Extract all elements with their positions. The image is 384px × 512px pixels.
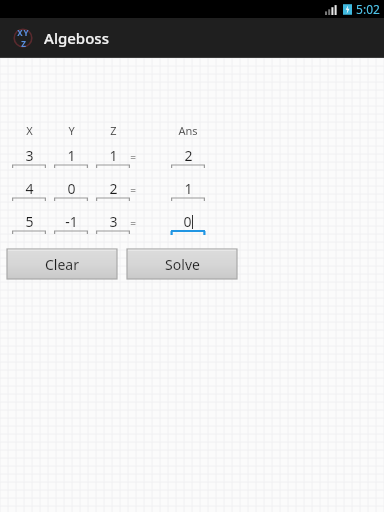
button[interactable]: 1 [96,146,130,170]
button[interactable]: Solve [127,249,237,279]
button[interactable]: 2 [96,179,130,203]
button[interactable]: 1 [171,179,205,203]
button[interactable]: Clear [7,249,117,279]
button[interactable]: 4 [12,179,46,203]
staticText: X [26,123,33,138]
staticText: 4 [25,179,34,198]
staticText: Z [110,123,117,138]
staticText: 5:02 [356,1,380,17]
staticText: 5 [25,212,34,231]
staticText: 1 [109,146,118,165]
staticText: 3 [25,146,34,165]
staticText: Solve [165,255,200,274]
staticText: 3 [109,212,118,231]
staticText: X [17,27,23,38]
button[interactable]: -1 [54,212,88,236]
staticText: 0 [67,179,76,198]
button[interactable]: 2 [171,146,205,170]
staticText: Y [23,27,29,38]
staticText: Y [68,123,75,138]
staticText: 1 [184,179,193,198]
staticText: 1 [67,146,76,165]
staticText: Ans [178,123,198,138]
button[interactable]: 0 [171,212,205,236]
staticText: 0 [183,212,192,231]
staticText: 2 [109,179,118,198]
staticText: Z [21,38,26,49]
button[interactable]: 3 [96,212,130,236]
staticText: Algeboss [44,28,109,48]
staticText: = [130,150,136,164]
button[interactable]: 1 [54,146,88,170]
staticText: Clear [45,255,79,274]
staticText: 2 [184,146,193,165]
button[interactable]: 0 [54,179,88,203]
button[interactable]: 3 [12,146,46,170]
button[interactable]: 5 [12,212,46,236]
staticText: = [130,183,136,197]
staticText: -1 [65,212,78,231]
staticText: = [130,216,136,230]
